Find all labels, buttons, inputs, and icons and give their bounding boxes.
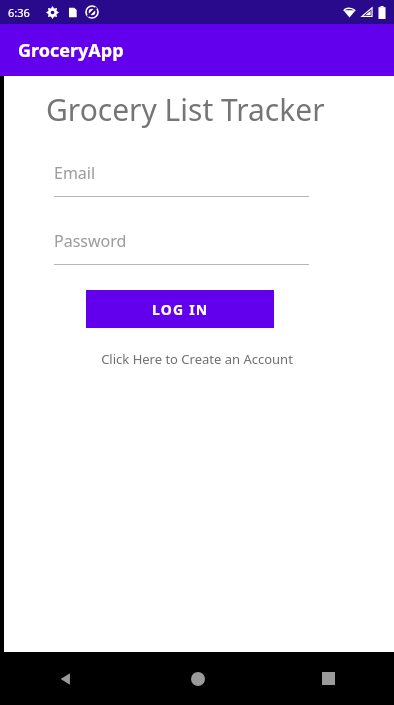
button[interactable]: Email — [54, 160, 309, 197]
button[interactable]: Password — [54, 228, 309, 265]
button[interactable]: GroceryApp — [0, 24, 394, 76]
staticText: Grocery List Tracker — [46, 89, 325, 130]
staticText: LOG IN — [152, 300, 209, 319]
staticText: Password — [54, 230, 127, 252]
button[interactable]: Recent apps — [263, 652, 394, 705]
staticText: 6:36 — [8, 5, 30, 20]
button[interactable]: Home — [132, 652, 263, 705]
staticText: Click Here to Create an Account — [101, 350, 293, 368]
button[interactable]: Back — [0, 652, 132, 705]
button[interactable]: Click Here to Create an Account — [4, 350, 390, 368]
staticText: GroceryApp — [18, 38, 124, 63]
staticText: Email — [54, 162, 96, 184]
button[interactable]: LOG IN — [86, 290, 274, 328]
